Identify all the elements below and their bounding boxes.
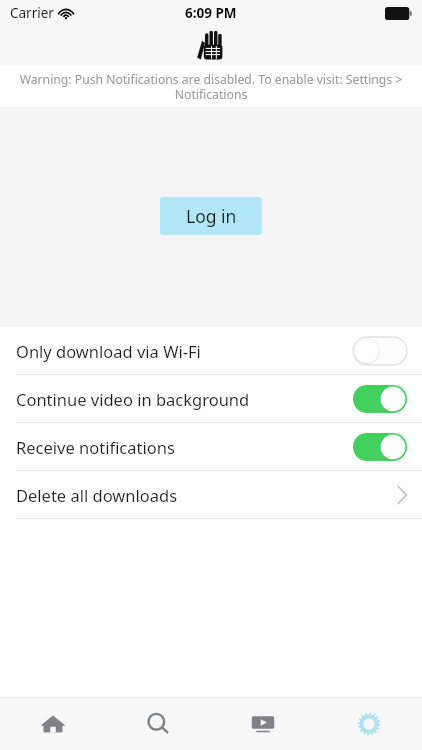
- staticText: Only download via Wi-Fi: [16, 340, 201, 362]
- button[interactable]: Off: [353, 337, 407, 365]
- button[interactable]: Home: [0, 698, 105, 750]
- staticText: Continue video in background: [16, 388, 250, 410]
- button[interactable]: Delete all downloads: [0, 471, 422, 518]
- staticText: Carrier: [10, 4, 54, 22]
- button[interactable]: Log in: [160, 197, 262, 235]
- button[interactable]: On: [353, 433, 407, 461]
- button[interactable]: On: [353, 385, 407, 413]
- staticText: Warning: Push Notifications are disabled…: [10, 71, 412, 102]
- other: Logo: [196, 30, 226, 62]
- button[interactable]: Continue video in background: [0, 375, 422, 422]
- staticText: Receive notifications: [16, 436, 175, 458]
- button[interactable]: Search: [105, 698, 210, 750]
- button[interactable]: Receive notifications: [0, 423, 422, 470]
- button[interactable]: Settings: [316, 698, 422, 750]
- staticText: 6:09 PM: [185, 4, 237, 22]
- button[interactable]: Videos: [210, 698, 316, 750]
- button[interactable]: Only download via Wi-Fi: [0, 327, 422, 374]
- staticText: Log in: [186, 204, 237, 228]
- staticText: Delete all downloads: [16, 484, 178, 506]
